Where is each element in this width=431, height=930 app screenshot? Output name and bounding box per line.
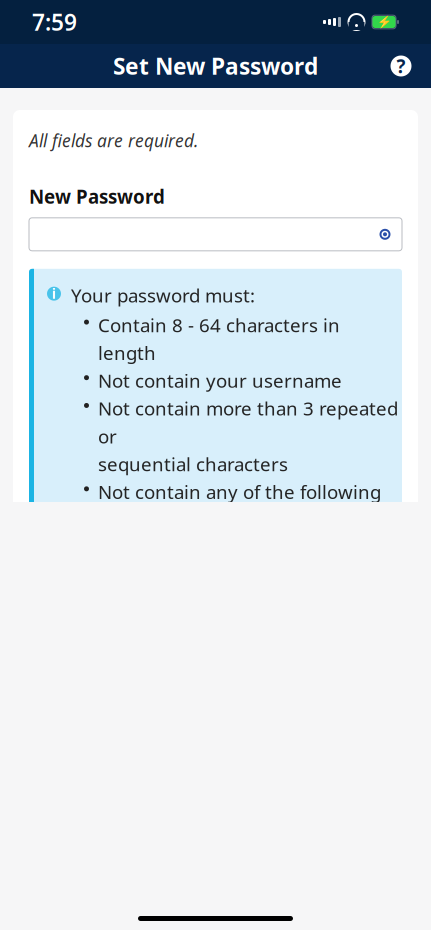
button[interactable]: Help [381, 46, 421, 86]
button[interactable]: Show password [368, 219, 402, 249]
staticText: Not contain more than 3 repeated or sequ… [98, 396, 398, 476]
staticText: Not contain any of the following words: … [98, 479, 381, 560]
staticText: New Password [29, 184, 165, 209]
staticText: Contain 8 - 64 characters in length [98, 313, 340, 365]
staticText: ? [396, 54, 405, 78]
staticText: All fields are required. [29, 129, 198, 152]
staticText: 7:59 [32, 7, 77, 37]
staticText: Your password must: [71, 283, 255, 308]
staticText: Set New Password [113, 51, 318, 81]
staticText: i [52, 285, 56, 302]
staticText: ⚡ [376, 15, 391, 29]
staticText: Not contain your username [98, 368, 342, 393]
